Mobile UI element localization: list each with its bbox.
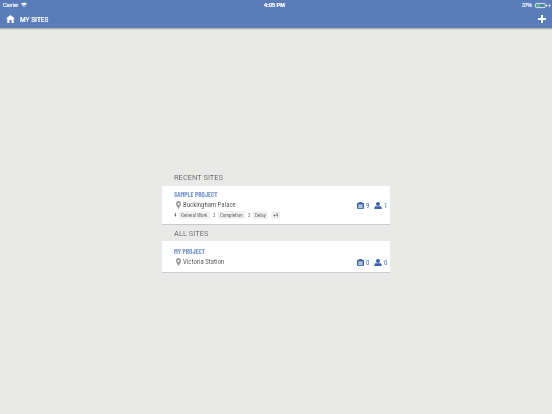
staticText: MY SITES: [20, 15, 49, 24]
staticText: 2: [248, 212, 251, 218]
staticText: Victoria Station: [183, 258, 225, 266]
staticText: 4:05 PM: [264, 2, 285, 8]
staticText: 0: [384, 259, 388, 266]
staticText: General Work: [181, 212, 208, 218]
staticText: 4: [174, 212, 177, 218]
staticText: 37%: [522, 2, 533, 8]
staticText: MY PROJECT: [174, 247, 206, 255]
staticText: 2: [213, 212, 216, 218]
staticText: Carrier: [3, 2, 19, 8]
button[interactable]: MY PROJECT: [162, 241, 390, 272]
staticText: +4: [273, 212, 278, 218]
staticText: 0: [366, 259, 370, 266]
staticText: Completion: [220, 212, 243, 218]
button[interactable]: Home: [0, 12, 20, 28]
button[interactable]: Add site: [532, 12, 552, 28]
button[interactable]: SAMPLE PROJECT: [162, 186, 390, 224]
staticText: Delay: [255, 212, 266, 218]
staticText: SAMPLE PROJECT: [174, 190, 218, 198]
staticText: 9: [366, 202, 370, 209]
staticText: ALL SITES: [174, 229, 209, 238]
staticText: RECENT SITES: [174, 173, 224, 182]
staticText: Buckingham Palace: [183, 201, 236, 209]
staticText: 1: [384, 202, 388, 209]
